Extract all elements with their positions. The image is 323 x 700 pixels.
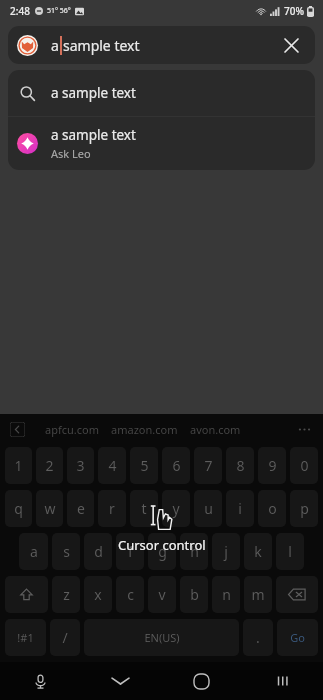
button[interactable]: v [148,576,176,613]
button[interactable]: amazon.com [111,422,178,437]
staticText: x [94,585,102,604]
staticText: 6 [172,456,181,475]
button[interactable]: r [98,490,126,527]
button[interactable]: 6 [162,447,190,484]
button[interactable]: 7 [194,447,222,484]
staticText: 7 [204,456,213,475]
button[interactable]: b [180,576,208,613]
staticText: p [300,499,309,518]
staticText: h [190,542,199,561]
staticText: a sample text [51,126,136,144]
staticText: 1 [14,456,23,475]
staticText: j [224,542,228,561]
staticText: g [158,542,167,561]
button[interactable]: e [67,490,94,527]
button[interactable]: apfcu.com [45,422,99,437]
staticText: v [158,585,166,604]
staticText: 8 [236,456,245,475]
button[interactable]: x [84,576,112,613]
button[interactable]: g [148,533,176,570]
staticText: a [51,36,59,55]
button[interactable]: m [244,576,272,613]
staticText: avon.com [190,422,241,437]
button[interactable]: Home [161,662,242,700]
staticText: 5 [140,456,149,475]
staticText: 70% [284,4,304,18]
button[interactable]: 9 [258,447,286,484]
button[interactable]: / [50,619,80,656]
staticText: s [63,542,70,561]
button[interactable]: 1 [5,447,32,484]
staticText: 4 [108,456,117,475]
button[interactable]: t [130,490,158,527]
staticText: q [14,499,23,518]
staticText: Go [290,630,305,645]
staticText: / [62,628,68,647]
button[interactable]: a [19,533,48,570]
button[interactable]: h [180,533,208,570]
button[interactable]: p [290,490,318,527]
staticText: 2 [45,456,54,475]
button[interactable]: f [116,533,144,570]
staticText: i [238,499,242,518]
staticText: 3 [76,456,85,475]
button[interactable]: a [8,26,315,64]
button[interactable]: Clear text [276,30,306,60]
button[interactable]: 5 [130,447,158,484]
button[interactable]: EN(US) [84,619,239,656]
button[interactable]: Shift [5,576,48,613]
button[interactable]: Go [277,619,318,656]
staticText: a [30,542,38,561]
button[interactable]: a sample text [8,117,315,170]
button[interactable]: s [52,533,80,570]
button[interactable]: z [52,576,80,613]
button[interactable]: More options [295,420,313,438]
button[interactable]: . [243,619,273,656]
staticText: z [63,585,70,604]
button[interactable]: 2 [36,447,63,484]
button[interactable]: Recent apps [242,662,323,700]
button[interactable]: 3 [67,447,94,484]
button[interactable]: 8 [226,447,254,484]
staticText: r [109,499,115,518]
staticText: f [128,542,133,561]
button[interactable]: a sample text [8,70,315,116]
button[interactable]: w [36,490,63,527]
button[interactable]: Back [80,662,161,700]
button[interactable]: d [84,533,112,570]
staticText: 0 [300,456,309,475]
staticText: 51° 56° [47,6,71,16]
staticText: t [141,499,147,518]
staticText: d [94,542,103,561]
button[interactable]: y [162,490,190,527]
button[interactable]: !#1 [5,619,46,656]
staticText: !#1 [17,630,34,645]
button[interactable]: 4 [98,447,126,484]
staticText: w [44,499,56,518]
button[interactable]: Previous suggestions [10,422,25,437]
staticText: c [127,585,134,604]
staticText: apfcu.com [45,422,99,437]
button[interactable]: 0 [290,447,318,484]
staticText: Ask Leo [51,146,91,161]
button[interactable]: o [258,490,286,527]
staticText: Cursor control [118,536,206,554]
button[interactable]: j [212,533,240,570]
button[interactable]: q [5,490,32,527]
button[interactable]: n [212,576,240,613]
button[interactable]: c [116,576,144,613]
button[interactable]: avon.com [190,422,241,437]
staticText: 9 [268,456,277,475]
button[interactable]: Backspace [276,576,318,613]
button[interactable]: u [194,490,222,527]
staticText: e [77,499,85,518]
staticText: a sample text [51,84,136,102]
staticText: EN(US) [144,630,180,645]
button[interactable]: Voice input [0,662,80,700]
staticText: amazon.com [111,422,178,437]
button[interactable]: i [226,490,254,527]
staticText: l [288,542,292,561]
staticText: y [172,499,180,518]
button[interactable]: k [244,533,272,570]
button[interactable]: l [276,533,304,570]
